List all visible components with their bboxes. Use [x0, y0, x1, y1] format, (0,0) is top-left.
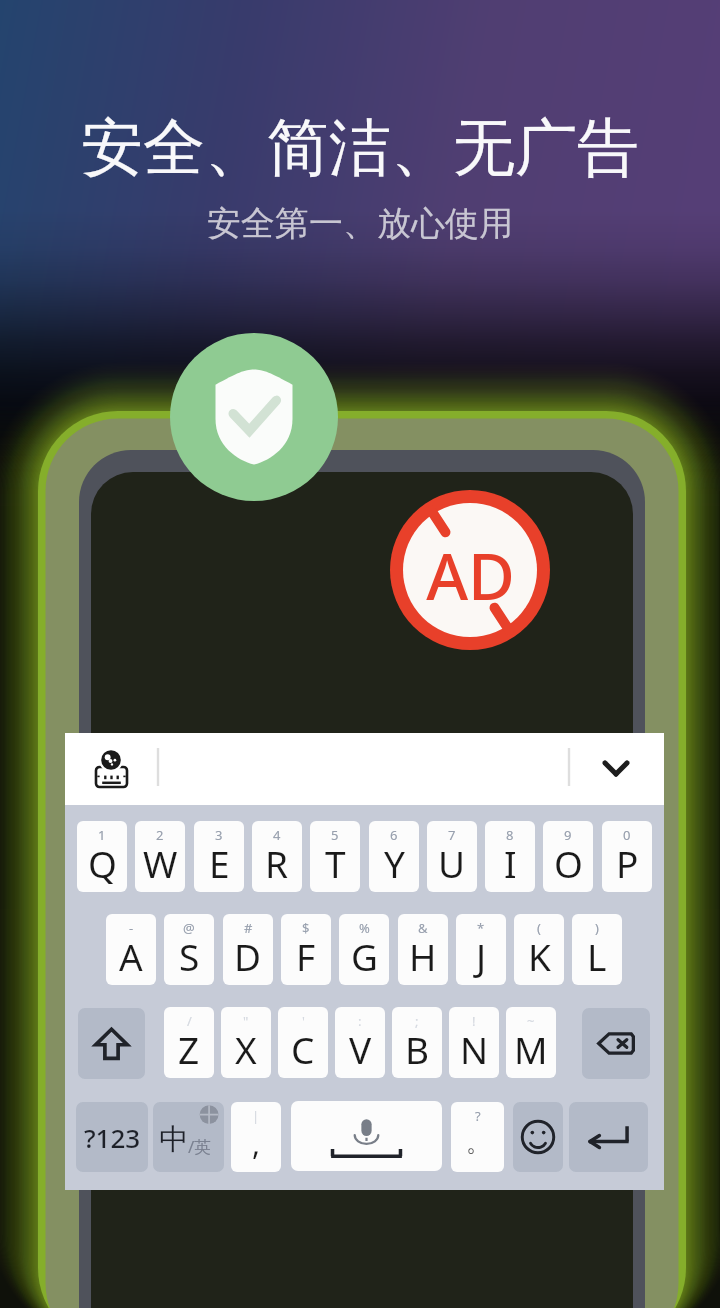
staticText: @: [183, 919, 195, 937]
staticText: J: [476, 931, 487, 981]
staticText: P: [616, 838, 639, 888]
staticText: /: [187, 1012, 192, 1030]
staticText: C: [291, 1024, 315, 1074]
button[interactable]: !: [449, 1007, 499, 1078]
button[interactable]: 1: [77, 821, 127, 892]
staticText: /英: [188, 1135, 212, 1158]
staticText: T: [325, 838, 346, 888]
staticText: 4: [273, 826, 281, 844]
button[interactable]: Shift: [78, 1008, 145, 1079]
staticText: 5: [331, 826, 339, 844]
staticText: &: [418, 919, 428, 937]
staticText: !: [472, 1012, 476, 1030]
button[interactable]: :: [335, 1007, 385, 1078]
staticText: 中: [159, 1121, 188, 1158]
staticText: #: [244, 919, 253, 937]
staticText: 9: [564, 826, 572, 844]
staticText: M: [514, 1024, 548, 1074]
button[interactable]: 4: [252, 821, 302, 892]
button[interactable]: 3: [194, 821, 244, 892]
button[interactable]: ~: [506, 1007, 556, 1078]
staticText: B: [405, 1024, 430, 1074]
button[interactable]: 7: [427, 821, 477, 892]
staticText: F: [296, 931, 316, 981]
staticText: *: [477, 919, 485, 937]
staticText: 8: [506, 826, 514, 844]
button[interactable]: Switch language: [153, 1102, 224, 1172]
staticText: 安全、简洁、无广告: [81, 109, 639, 187]
staticText: 6: [390, 826, 398, 844]
button[interactable]: (: [514, 914, 564, 985]
staticText: ~: [527, 1012, 535, 1030]
button[interactable]: $: [281, 914, 331, 985]
staticText: (: [537, 919, 541, 937]
staticText: Q: [88, 838, 117, 888]
button[interactable]: Enter: [569, 1102, 648, 1172]
button[interactable]: ': [278, 1007, 328, 1078]
button[interactable]: Emoji: [513, 1102, 563, 1172]
staticText: N: [460, 1024, 489, 1074]
staticText: O: [554, 838, 583, 888]
button[interactable]: 6: [369, 821, 419, 892]
staticText: $: [302, 919, 310, 937]
button[interactable]: 2: [135, 821, 185, 892]
staticText: ": [243, 1012, 249, 1030]
staticText: 1: [98, 826, 106, 844]
button[interactable]: -: [106, 914, 156, 985]
staticText: 。: [466, 1128, 490, 1158]
button[interactable]: ;: [392, 1007, 442, 1078]
button[interactable]: /: [164, 1007, 214, 1078]
button[interactable]: @: [164, 914, 214, 985]
button[interactable]: #: [223, 914, 273, 985]
staticText: 3: [215, 826, 223, 844]
staticText: 安全第一、放心使用: [207, 202, 513, 245]
staticText: E: [209, 838, 230, 888]
staticText: |: [252, 1107, 260, 1125]
staticText: 7: [448, 826, 456, 844]
button[interactable]: ": [221, 1007, 271, 1078]
staticText: %: [359, 919, 370, 937]
staticText: :: [358, 1012, 362, 1030]
button[interactable]: Numbers and symbols: [76, 1102, 148, 1172]
staticText: ,: [252, 1123, 261, 1164]
staticText: 0: [623, 826, 631, 844]
staticText: Y: [384, 838, 405, 888]
staticText: Z: [178, 1024, 200, 1074]
button[interactable]: Space: [291, 1101, 442, 1171]
button[interactable]: 0: [602, 821, 652, 892]
staticText: AD: [426, 532, 515, 612]
button[interactable]: |: [231, 1102, 281, 1172]
button[interactable]: 9: [543, 821, 593, 892]
staticText: ': [302, 1012, 305, 1030]
staticText: H: [409, 931, 437, 981]
button[interactable]: *: [456, 914, 506, 985]
button[interactable]: 5: [310, 821, 360, 892]
staticText: ;: [415, 1012, 419, 1030]
staticText: S: [179, 931, 200, 981]
button[interactable]: 8: [485, 821, 535, 892]
staticText: U: [438, 838, 466, 888]
staticText: ): [595, 919, 599, 937]
button[interactable]: Backspace: [582, 1008, 650, 1079]
staticText: R: [265, 838, 289, 888]
button[interactable]: ?: [451, 1102, 504, 1172]
staticText: ?123: [84, 1120, 141, 1155]
staticText: X: [235, 1024, 257, 1074]
staticText: ?: [475, 1107, 481, 1125]
button[interactable]: %: [339, 914, 389, 985]
staticText: V: [349, 1024, 372, 1074]
staticText: L: [587, 931, 607, 981]
button[interactable]: ): [572, 914, 622, 985]
staticText: -: [129, 919, 134, 937]
staticText: 2: [156, 826, 164, 844]
staticText: I: [504, 838, 517, 888]
button[interactable]: &: [398, 914, 448, 985]
staticText: G: [351, 931, 378, 981]
staticText: W: [143, 838, 178, 888]
staticText: K: [528, 931, 551, 981]
staticText: A: [119, 931, 143, 981]
staticText: D: [234, 931, 262, 981]
